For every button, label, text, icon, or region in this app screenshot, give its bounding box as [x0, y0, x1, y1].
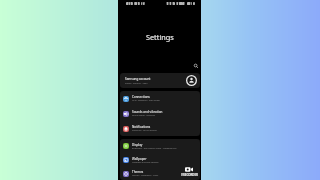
button[interactable]: Search [190, 60, 201, 71]
button[interactable]: Display [120, 139, 200, 153]
button[interactable]: Samsung account [120, 73, 200, 88]
staticText: Display [132, 143, 143, 147]
staticText: Profile · Security · Apps [125, 82, 148, 85]
staticText: Sound quality · Ringtone [132, 114, 155, 117]
button[interactable]: Notifications [120, 121, 200, 136]
button[interactable]: Themes [120, 167, 200, 180]
staticText: Settings [146, 32, 174, 42]
button[interactable]: Wallpaper [120, 153, 200, 167]
staticText: VRECORDER [181, 173, 198, 177]
staticText: Wallpaper [132, 157, 147, 161]
staticText: Samsung account [125, 77, 151, 81]
staticText: Status bar · Do not disturb [132, 129, 157, 132]
staticText: Notifications [132, 125, 151, 129]
staticText: Connections [132, 95, 150, 99]
staticText: Themes [132, 170, 144, 174]
staticText: Themes · Wallpapers · Icons [132, 174, 159, 177]
staticText: Wallpaper and style settings [132, 161, 159, 164]
staticText: Sounds and vibration [132, 110, 163, 114]
staticText: Wi-Fi · Bluetooth · Data usage [132, 99, 160, 102]
staticText: Brightness · Eye comfort shield · Naviga… [132, 147, 177, 150]
button[interactable]: Sounds and vibration [120, 106, 200, 121]
button[interactable]: Connections [120, 91, 200, 106]
